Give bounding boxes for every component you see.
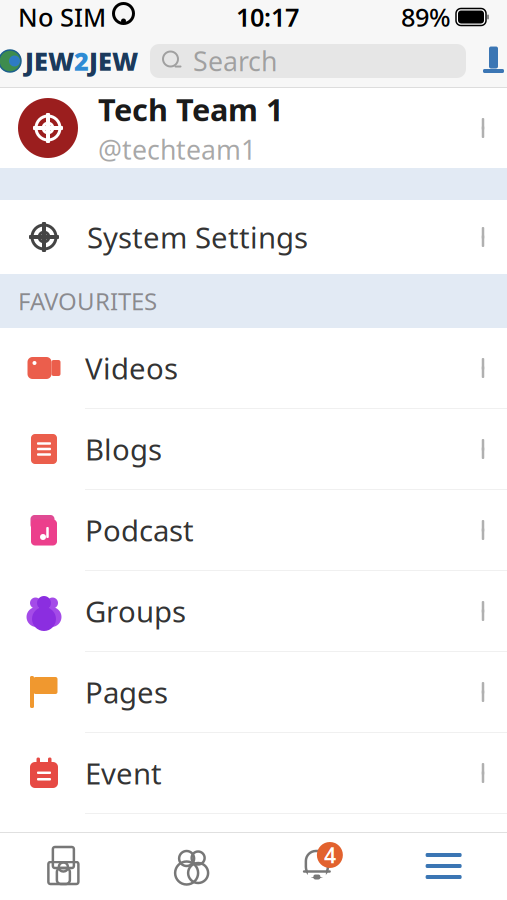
staticText: Event <box>85 753 162 792</box>
staticText: 10:17 <box>236 0 299 34</box>
staticText: Groups <box>85 591 186 630</box>
button[interactable]: Compose <box>474 44 507 78</box>
staticText: @techteam1 <box>98 132 256 167</box>
button[interactable]: Friends <box>127 832 254 900</box>
staticText: 4 <box>324 841 336 869</box>
staticText: 89% <box>401 0 451 34</box>
button[interactable]: Videos <box>0 328 507 409</box>
staticText: No SIM <box>18 0 106 34</box>
staticText: 2 <box>74 44 89 78</box>
button[interactable]: Event <box>0 733 507 814</box>
button[interactable]: Blogs <box>0 409 507 490</box>
staticText: JEW <box>25 44 74 78</box>
button[interactable]: Groups <box>0 571 507 652</box>
staticText: Blogs <box>85 429 162 468</box>
staticText: FAVOURITES <box>18 285 157 317</box>
staticText: Videos <box>85 348 178 387</box>
staticText: JEW <box>89 44 138 78</box>
button[interactable]: Tech Team 1 <box>0 88 507 168</box>
button[interactable]: Notifications, 4 new <box>253 832 380 900</box>
staticText: Pages <box>85 672 168 711</box>
button[interactable]: Pages <box>0 652 507 733</box>
button[interactable]: Podcast <box>0 490 507 571</box>
staticText: Search <box>193 43 277 79</box>
staticText: Tech Team 1 <box>98 89 284 130</box>
button[interactable]: Search <box>150 44 466 78</box>
button[interactable]: JEW2JEW Home <box>0 44 138 78</box>
staticText: Podcast <box>85 510 194 549</box>
button[interactable]: Menu <box>380 832 507 900</box>
button[interactable]: System Settings <box>0 200 507 274</box>
button[interactable]: Home <box>0 832 127 900</box>
staticText: System Settings <box>87 217 308 256</box>
